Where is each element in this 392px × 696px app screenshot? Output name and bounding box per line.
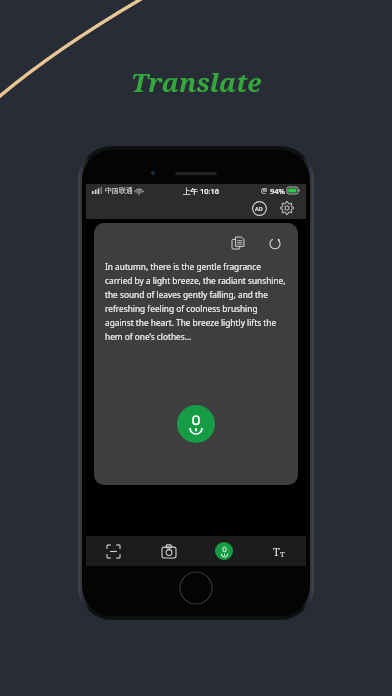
button[interactable]: Settings [278,199,296,217]
staticText: Translate [131,64,262,99]
button[interactable]: Text [251,536,306,566]
staticText: T [280,549,285,559]
staticText: 94% [270,186,285,196]
button[interactable]: Copy [228,233,248,253]
button[interactable]: Share [265,233,285,253]
button[interactable]: Remove ads [250,199,268,217]
staticText: @ [261,186,268,196]
staticText: In autumn, there is the gentle fragrance… [105,261,287,342]
button[interactable]: Camera [141,536,196,566]
button[interactable]: Record voice [177,405,215,443]
staticText: T [273,544,280,559]
button[interactable]: Scan [86,536,141,566]
button[interactable]: Voice [196,536,251,566]
staticText: 上午 10:16 [183,186,220,196]
staticText: AD [255,205,263,212]
staticText: 中国联通 [105,186,133,195]
